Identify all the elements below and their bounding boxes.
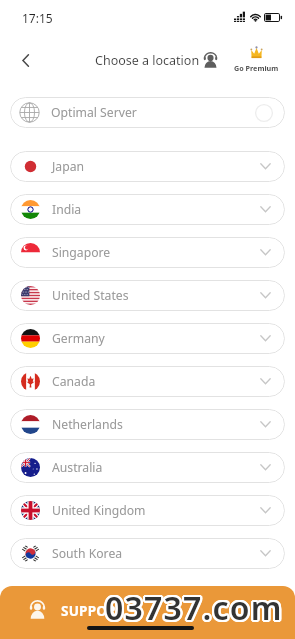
staticText: 03737.com [105, 584, 283, 628]
staticText: 03737.com [106, 585, 284, 629]
staticText: Australia [52, 459, 103, 476]
staticText: South Korea [52, 545, 123, 562]
staticText: Germany [52, 330, 105, 347]
button[interactable]: Back [12, 47, 38, 73]
button[interactable]: Optimal Server [10, 97, 285, 128]
button[interactable]: India [10, 194, 285, 225]
staticText: Go Premium [234, 63, 279, 73]
staticText: 03737.com [107, 586, 285, 630]
staticText: SUPPORT [61, 602, 125, 620]
staticText: United States [52, 287, 129, 304]
staticText: 03737.com [105, 586, 283, 630]
button[interactable]: South Korea [10, 538, 285, 569]
staticText: Choose a location [95, 52, 200, 69]
staticText: 03737.com [104, 588, 282, 632]
staticText: 03737.com [104, 585, 282, 629]
staticText: Optimal Server [51, 104, 137, 121]
staticText: 03737.com [107, 587, 285, 631]
staticText: 03737.com [105, 588, 283, 632]
staticText: 17:15 [22, 10, 53, 26]
button[interactable]: Support agent [203, 52, 218, 68]
staticText: Netherlands [52, 416, 123, 433]
staticText: 03737.com [104, 587, 282, 631]
button[interactable]: Australia [10, 452, 285, 483]
staticText: United Kingdom [52, 502, 146, 519]
button[interactable]: Go Premium [232, 46, 281, 73]
staticText: 03737.com [106, 584, 284, 628]
button[interactable]: Netherlands [10, 409, 285, 440]
button[interactable]: United States [10, 280, 285, 311]
button[interactable]: Canada [10, 366, 285, 397]
button[interactable]: Japan [10, 151, 285, 182]
staticText: 03737.com [103, 586, 281, 630]
staticText: 03737.com [104, 584, 282, 628]
button[interactable]: Singapore [10, 237, 285, 268]
staticText: Canada [52, 373, 96, 390]
button[interactable]: SUPPORT [0, 586, 295, 639]
staticText: 03737.com [107, 585, 285, 629]
button[interactable]: Germany [10, 323, 285, 354]
staticText: 03737.com [103, 587, 281, 631]
staticText: Singapore [52, 244, 111, 261]
button[interactable]: United Kingdom [10, 495, 285, 526]
staticText: 03737.com [106, 588, 284, 632]
staticText: 03737.com [106, 587, 284, 631]
staticText: Japan [52, 158, 85, 175]
staticText: India [52, 201, 82, 218]
staticText: 03737.com [103, 585, 281, 629]
